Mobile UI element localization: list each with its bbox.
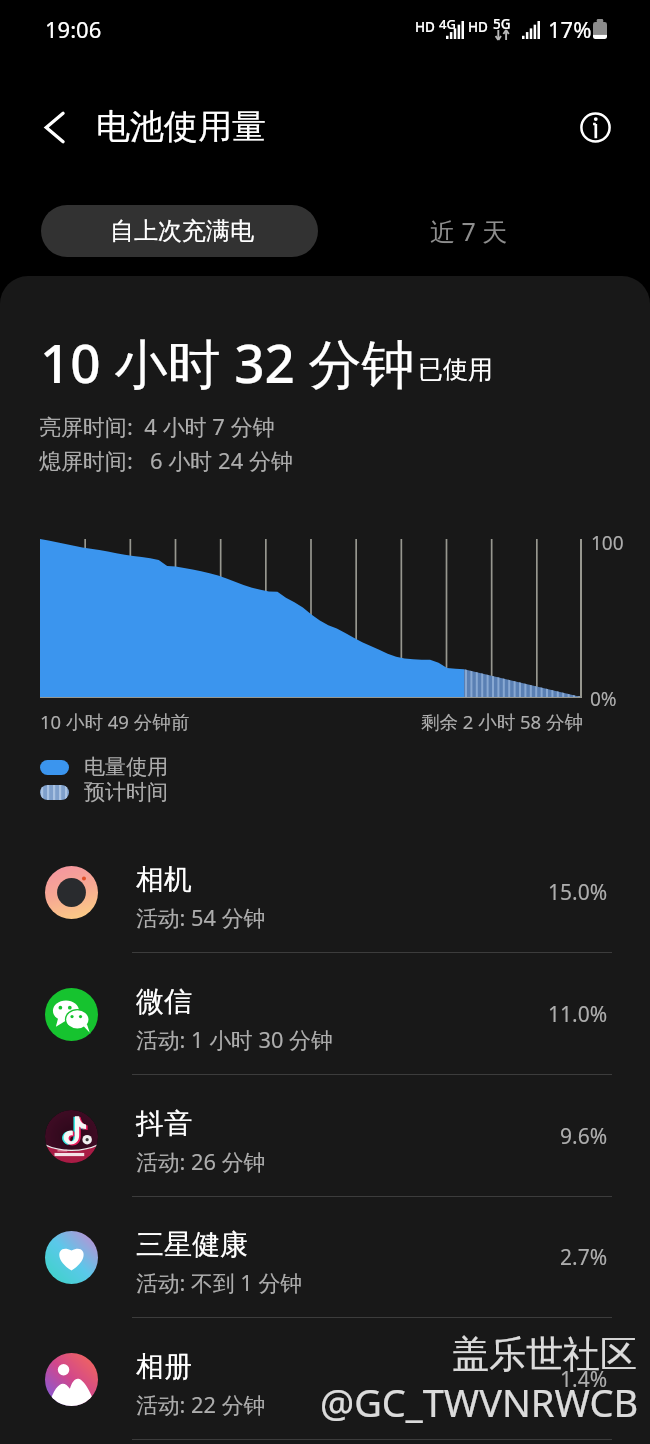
- button[interactable]: Back: [22, 98, 80, 156]
- staticText: 活动: 54 分钟: [136, 903, 266, 933]
- staticText: 19:06: [45, 14, 102, 44]
- button[interactable]: 近 7 天: [406, 205, 532, 257]
- staticText: 自上次充满电: [110, 216, 254, 246]
- button[interactable]: 抖音: [0, 1075, 650, 1197]
- staticText: 10 小时 32 分钟: [40, 326, 415, 398]
- staticText: HD: [415, 18, 435, 36]
- staticText: 相册: [136, 1349, 192, 1384]
- staticText: 微信: [136, 984, 192, 1019]
- staticText: 亮屏时间: 4 小时 7 分钟: [39, 411, 275, 441]
- button[interactable]: 三星健康: [0, 1196, 650, 1318]
- staticText: 预计时间: [84, 779, 168, 805]
- staticText: 9.6%: [560, 1122, 608, 1151]
- staticText: @GC_TWVNRWCB: [320, 1376, 639, 1428]
- staticText: 活动: 22 分钟: [136, 1390, 266, 1420]
- staticText: 17%: [548, 14, 592, 44]
- button[interactable]: Information: [569, 101, 621, 153]
- staticText: 相机: [136, 862, 192, 897]
- staticText: 11.0%: [548, 1000, 608, 1029]
- staticText: 电量使用: [84, 754, 168, 780]
- staticText: HD: [468, 18, 488, 36]
- staticText: 活动: 不到 1 分钟: [136, 1268, 303, 1298]
- staticText: 15.0%: [548, 878, 608, 907]
- button[interactable]: 相机: [0, 831, 650, 953]
- staticText: 近 7 天: [430, 214, 508, 248]
- staticText: 熄屏时间: 6 小时 24 分钟: [39, 445, 293, 475]
- staticText: 抖音: [136, 1106, 192, 1141]
- staticText: 10 小时 49 分钟前: [40, 709, 190, 734]
- staticText: 活动: 26 分钟: [136, 1147, 266, 1177]
- staticText: 剩余 2 小时 58 分钟: [421, 709, 583, 734]
- staticText: 1.4%: [560, 1365, 608, 1394]
- staticText: 2.7%: [560, 1243, 608, 1272]
- staticText: 电池使用量: [96, 105, 266, 148]
- staticText: 三星健康: [136, 1227, 248, 1262]
- staticText: 0%: [590, 686, 617, 712]
- staticText: 已使用: [418, 354, 493, 385]
- button[interactable]: 微信: [0, 953, 650, 1075]
- staticText: 4G: [439, 15, 456, 33]
- button[interactable]: 相册: [0, 1318, 650, 1440]
- button[interactable]: 自上次充满电: [41, 205, 318, 257]
- staticText: 100: [591, 530, 624, 556]
- staticText: 活动: 1 小时 30 分钟: [136, 1025, 333, 1055]
- staticText: 5G: [493, 15, 511, 33]
- staticText: 盖乐世社区: [452, 1331, 637, 1378]
